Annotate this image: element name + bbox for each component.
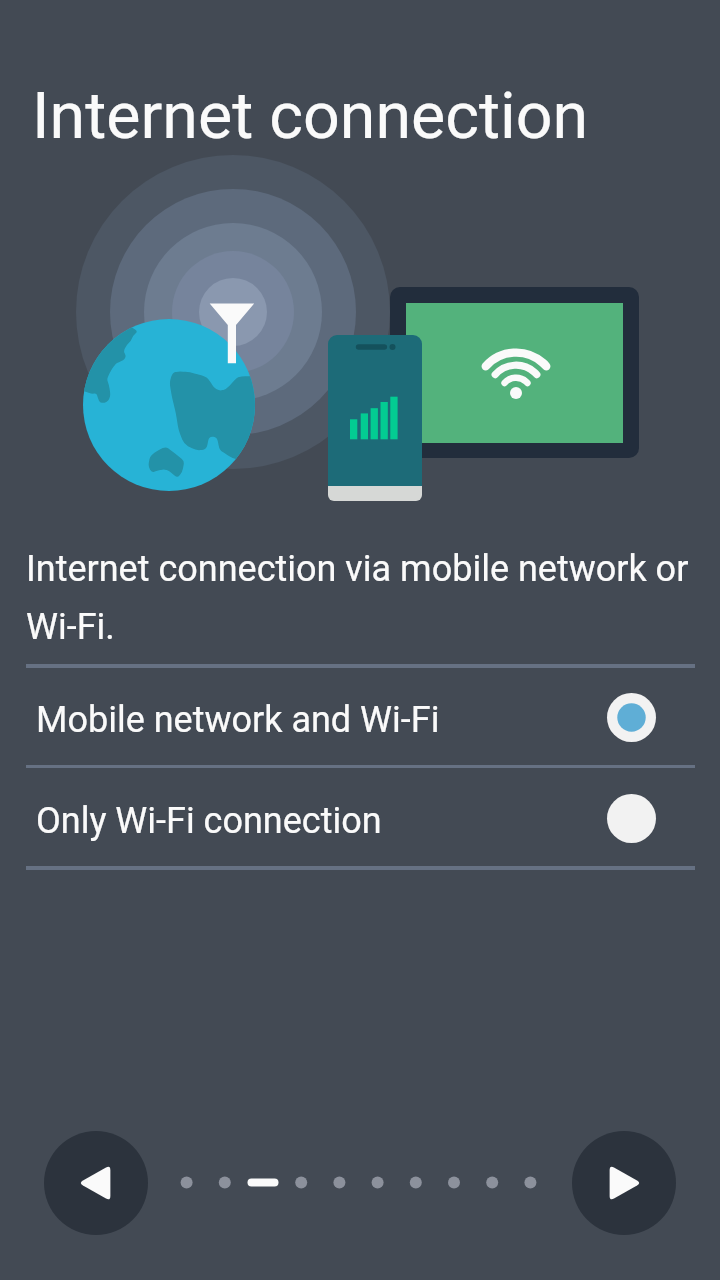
button[interactable]: Only Wi-Fi connection: [26, 768, 694, 868]
button[interactable]: Mobile network and Wi-Fi: [26, 667, 694, 767]
staticText: Internet connection: [32, 78, 589, 154]
staticText: Mobile network and Wi-Fi: [36, 699, 440, 741]
staticText: Only Wi-Fi connection: [36, 800, 382, 842]
button[interactable]: Next: [572, 1131, 676, 1235]
staticText: Internet connection via mobile network o…: [26, 548, 706, 648]
button[interactable]: Previous: [44, 1131, 148, 1235]
